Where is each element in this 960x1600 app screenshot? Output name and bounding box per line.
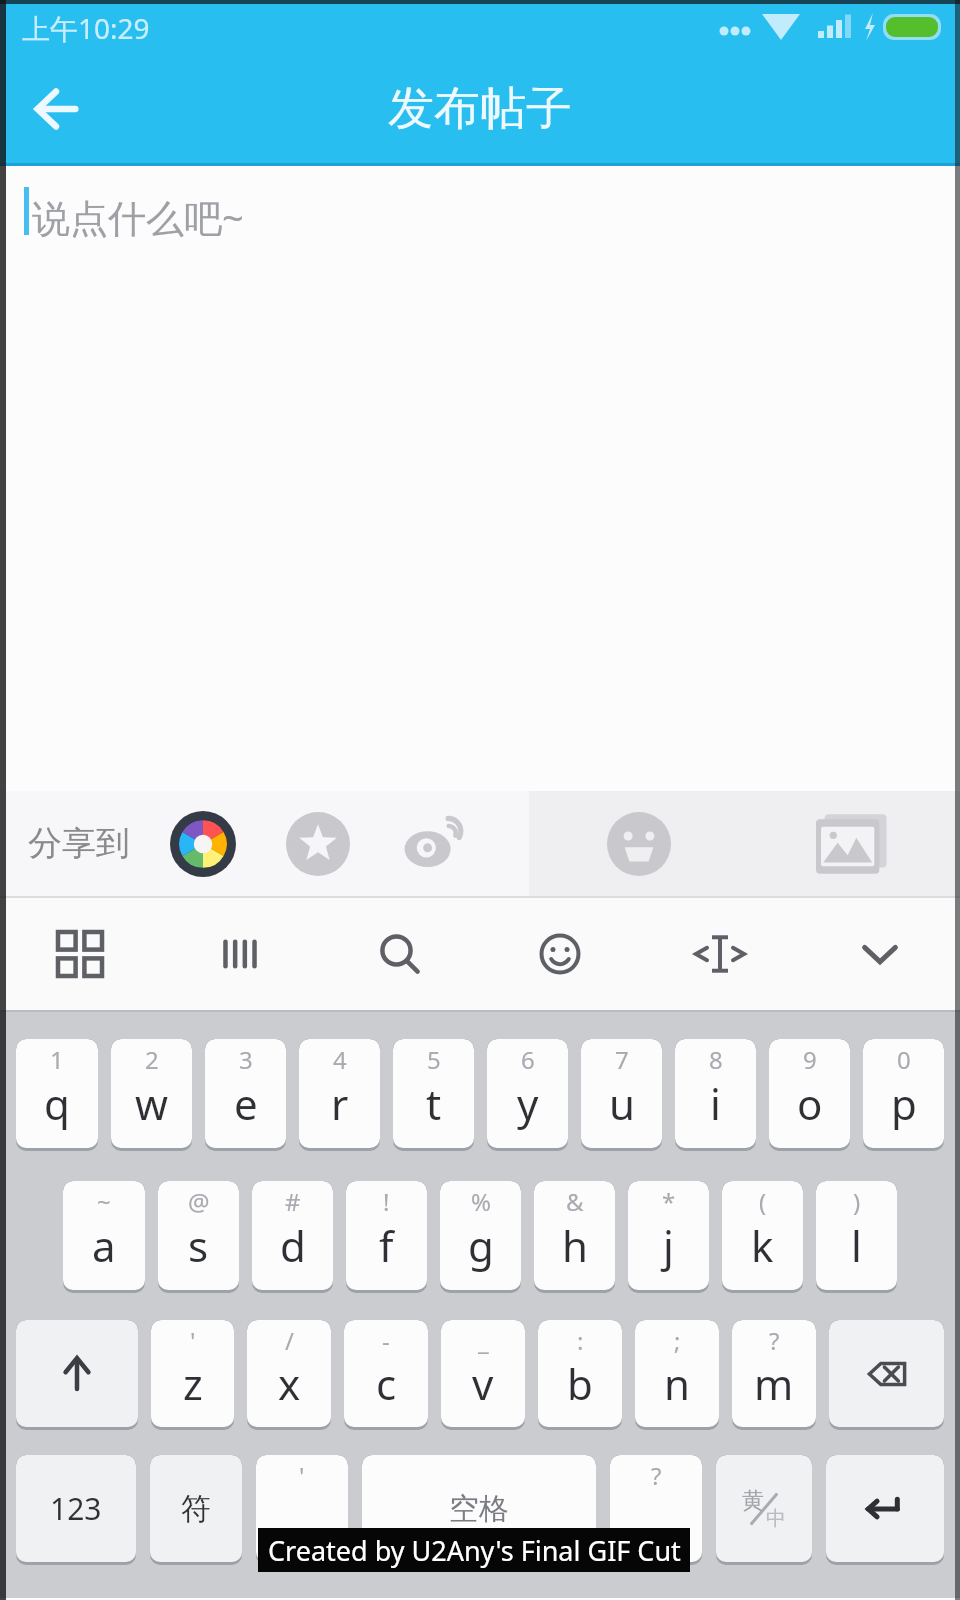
button[interactable]: 黄: [716, 1455, 812, 1562]
staticText: z: [183, 1355, 203, 1412]
button[interactable]: (: [722, 1181, 803, 1290]
staticText: n: [664, 1355, 690, 1412]
staticText: 123: [50, 1488, 102, 1529]
staticText: c: [376, 1355, 397, 1412]
staticText: 符: [181, 1490, 211, 1528]
button[interactable]: _: [441, 1320, 525, 1427]
staticText: 分享到: [28, 822, 130, 865]
staticText: o: [797, 1075, 823, 1132]
button[interactable]: [170, 811, 236, 877]
staticText: g: [468, 1217, 494, 1274]
staticText: t: [426, 1075, 442, 1132]
staticText: 上午10:29: [22, 9, 150, 47]
button[interactable]: [607, 812, 671, 876]
staticText: l: [851, 1217, 862, 1274]
button[interactable]: 3: [205, 1039, 286, 1148]
staticText: 1: [50, 1043, 64, 1076]
button[interactable]: 说点什么吧~: [0, 166, 960, 791]
staticText: b: [567, 1355, 593, 1412]
button[interactable]: :: [538, 1320, 622, 1427]
button[interactable]: @: [158, 1181, 239, 1290]
staticText: 中: [766, 1506, 786, 1531]
button[interactable]: !: [346, 1181, 427, 1290]
button[interactable]: 1: [16, 1039, 98, 1148]
staticText: y: [517, 1075, 539, 1132]
staticText: ?: [769, 1324, 780, 1357]
button[interactable]: ): [816, 1181, 897, 1290]
button[interactable]: [22, 75, 90, 143]
staticText: r: [331, 1075, 349, 1132]
button[interactable]: /: [247, 1320, 331, 1427]
staticText: -: [382, 1324, 390, 1357]
staticText: 4: [333, 1043, 347, 1076]
staticText: %: [471, 1185, 491, 1218]
button[interactable]: [816, 813, 888, 875]
button[interactable]: [402, 812, 466, 876]
button[interactable]: [16, 1320, 138, 1427]
button[interactable]: [0, 898, 160, 1010]
staticText: ;: [674, 1324, 681, 1357]
staticText: 黄: [742, 1487, 764, 1515]
staticText: *: [662, 1185, 676, 1218]
staticText: k: [751, 1217, 774, 1274]
button[interactable]: 5: [393, 1039, 474, 1148]
staticText: /: [285, 1324, 294, 1357]
button[interactable]: 7: [581, 1039, 662, 1148]
button[interactable]: 6: [487, 1039, 568, 1148]
staticText: 空格: [449, 1490, 509, 1528]
button[interactable]: [640, 898, 800, 1010]
staticText: 9: [803, 1043, 817, 1076]
staticText: e: [234, 1075, 258, 1132]
staticText: 说点什么吧~: [32, 191, 244, 243]
staticText: @: [188, 1185, 210, 1218]
button[interactable]: [480, 898, 640, 1010]
staticText: Created by U2Any's Final GIF Cut: [268, 1532, 681, 1569]
button[interactable]: [800, 898, 960, 1010]
staticText: h: [562, 1217, 588, 1274]
button[interactable]: %: [440, 1181, 521, 1290]
button[interactable]: 0: [863, 1039, 944, 1148]
staticText: 0: [897, 1043, 911, 1076]
staticText: 5: [427, 1043, 441, 1076]
button[interactable]: 空格: [362, 1455, 596, 1562]
staticText: &: [566, 1185, 584, 1218]
staticText: 3: [239, 1043, 253, 1076]
button[interactable]: [286, 812, 350, 876]
staticText: :: [577, 1324, 584, 1357]
staticText: ): [853, 1185, 861, 1218]
button[interactable]: *: [628, 1181, 709, 1290]
staticText: w: [135, 1075, 169, 1132]
staticText: ': [190, 1324, 196, 1357]
staticText: (: [759, 1185, 767, 1218]
staticText: a: [92, 1217, 116, 1274]
button[interactable]: 符: [150, 1455, 242, 1562]
staticText: .: [650, 1490, 662, 1547]
button[interactable]: 8: [675, 1039, 756, 1148]
button[interactable]: [320, 898, 480, 1010]
staticText: f: [379, 1217, 394, 1274]
button[interactable]: 123: [16, 1455, 136, 1562]
button[interactable]: [160, 898, 320, 1010]
button[interactable]: ?: [732, 1320, 816, 1427]
staticText: ': [299, 1459, 305, 1492]
button[interactable]: [826, 1455, 944, 1562]
staticText: 2: [145, 1043, 159, 1076]
button[interactable]: [829, 1320, 944, 1427]
staticText: d: [280, 1217, 306, 1274]
staticText: 8: [709, 1043, 723, 1076]
button[interactable]: 4: [299, 1039, 380, 1148]
staticText: 6: [521, 1043, 535, 1076]
button[interactable]: ~: [63, 1181, 145, 1290]
staticText: q: [44, 1075, 70, 1132]
button[interactable]: 9: [769, 1039, 850, 1148]
button[interactable]: ': [256, 1455, 348, 1562]
button[interactable]: ;: [635, 1320, 719, 1427]
button[interactable]: ?: [610, 1455, 702, 1562]
button[interactable]: -: [344, 1320, 428, 1427]
staticText: ?: [651, 1459, 662, 1492]
button[interactable]: #: [252, 1181, 333, 1290]
button[interactable]: 2: [111, 1039, 192, 1148]
button[interactable]: ': [151, 1320, 234, 1427]
staticText: ~: [97, 1185, 111, 1218]
button[interactable]: &: [534, 1181, 615, 1290]
